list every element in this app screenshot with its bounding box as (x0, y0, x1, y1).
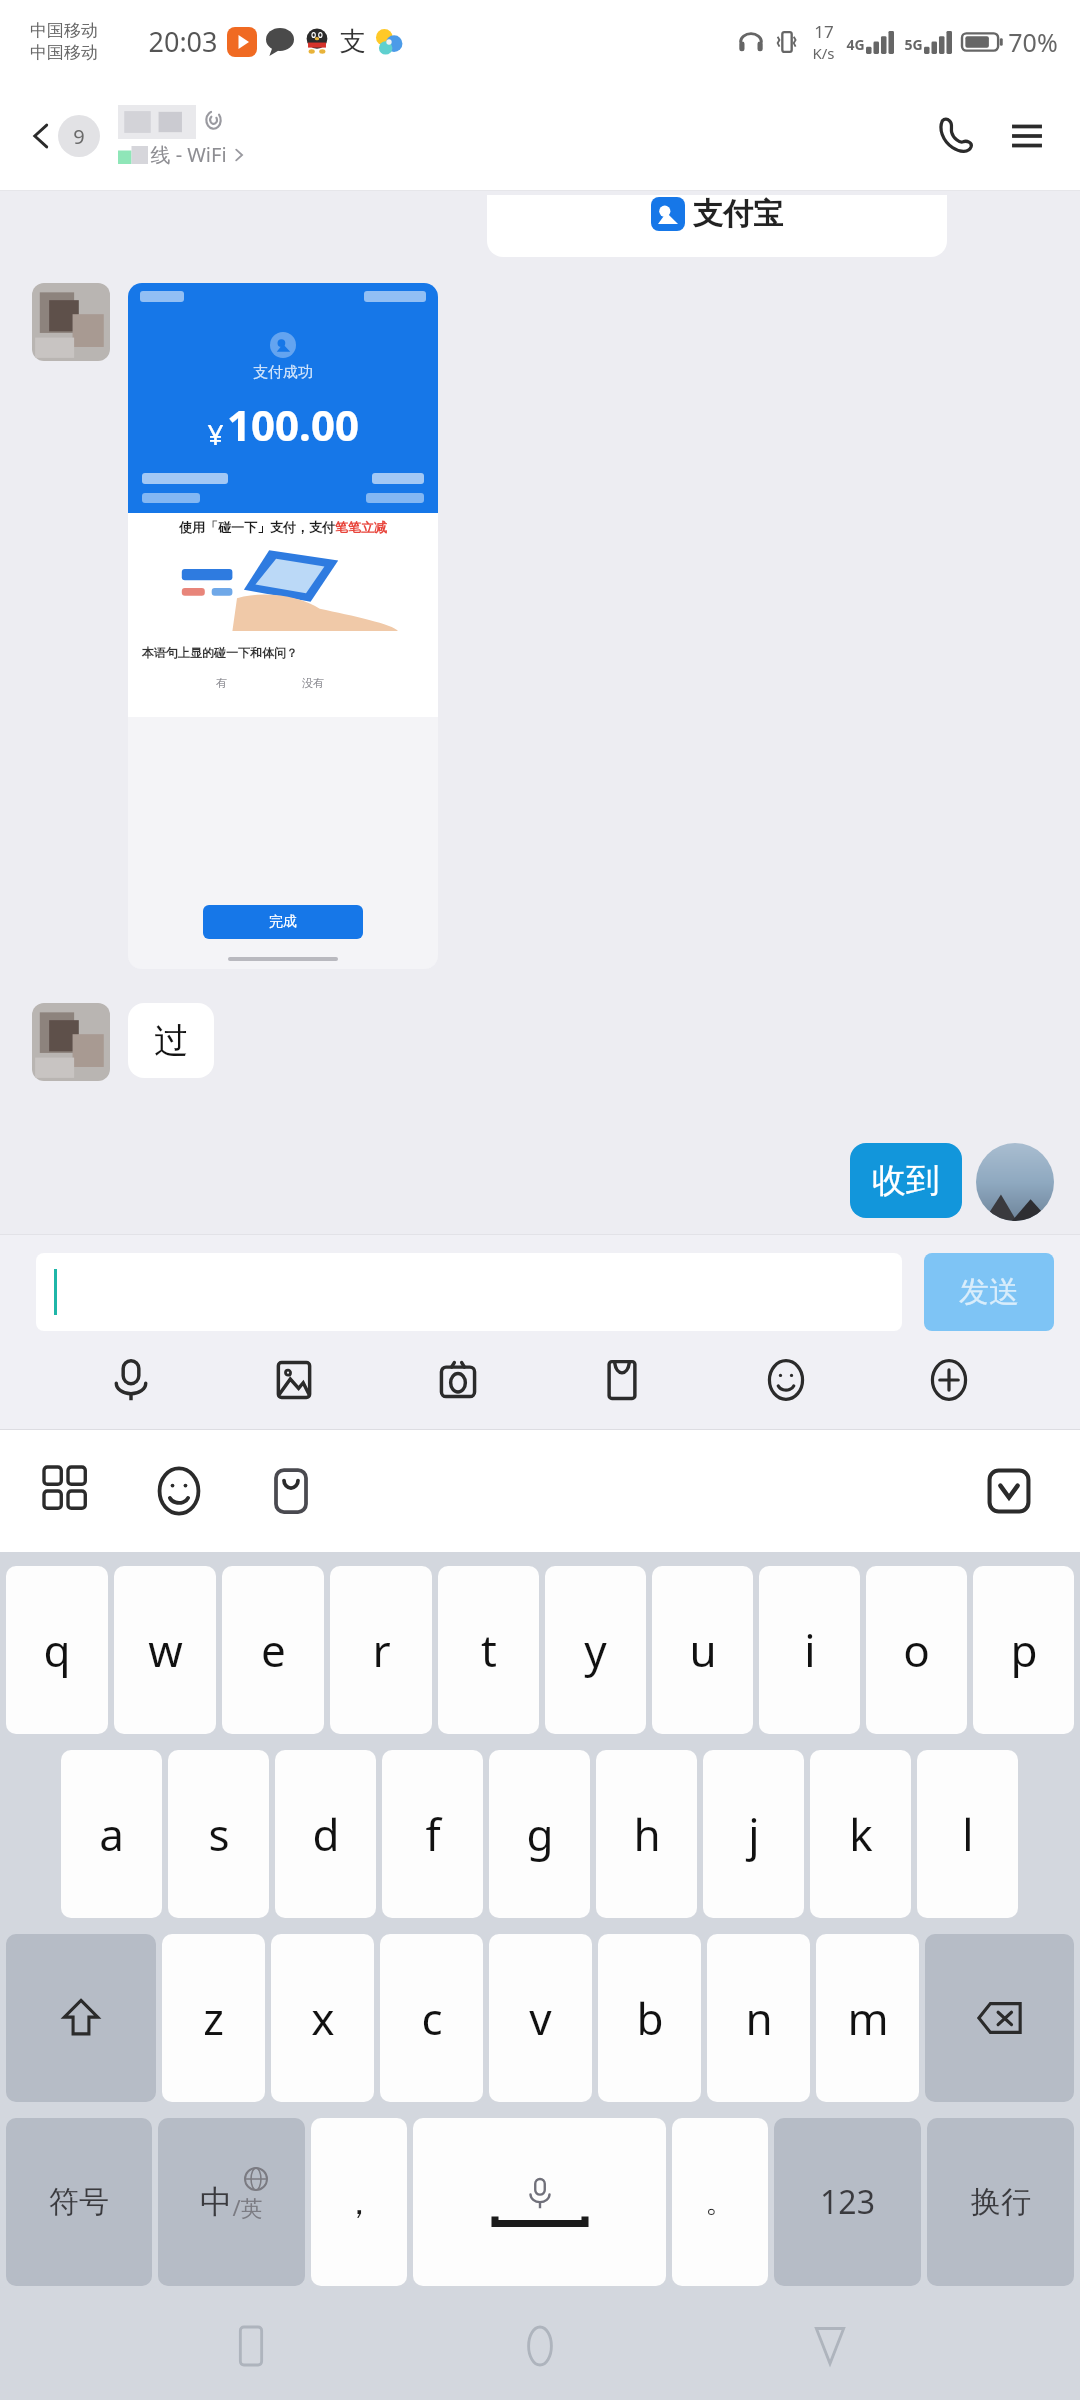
button[interactable] (32, 1003, 110, 1081)
staticText: 4G (846, 35, 865, 54)
button[interactable]: g (489, 1750, 590, 1918)
button[interactable]: Hide keyboard (972, 1454, 1046, 1528)
button[interactable]: Voice message (98, 1347, 164, 1413)
button[interactable]: i (759, 1566, 860, 1734)
button[interactable]: l (917, 1750, 1018, 1918)
button[interactable]: v (489, 1934, 592, 2102)
button[interactable]: Keyboard layouts (34, 1457, 102, 1525)
staticText: c (421, 1988, 443, 2048)
button[interactable]: New line (927, 2118, 1074, 2286)
button[interactable]: u (652, 1566, 753, 1734)
staticText: 没有 (302, 676, 324, 690)
staticText: 中 (200, 2182, 232, 2222)
button[interactable]: Back, 9 unread (20, 109, 108, 163)
staticText: d (312, 1804, 340, 1864)
button[interactable]: j (703, 1750, 804, 1918)
button[interactable]: Emoji (753, 1347, 819, 1413)
button[interactable]: p (973, 1566, 1074, 1734)
staticText: 支付成功 (253, 363, 313, 382)
staticText: 5G (904, 35, 923, 54)
button[interactable]: m (816, 1934, 919, 2102)
staticText: 发送 (959, 1273, 1019, 1311)
button[interactable]: Menu (1000, 109, 1054, 163)
button[interactable]: o (866, 1566, 967, 1734)
staticText: t (481, 1620, 497, 1680)
staticText: 123 (820, 2180, 875, 2224)
staticText: 支付宝 (693, 195, 783, 233)
button[interactable]: Language (158, 2118, 305, 2286)
button[interactable]: f (382, 1750, 483, 1918)
button[interactable]: Back (791, 2307, 869, 2385)
staticText: 过 (154, 1019, 188, 1062)
staticText: w (148, 1620, 183, 1680)
button[interactable]: d (275, 1750, 376, 1918)
button[interactable] (976, 1143, 1054, 1221)
button[interactable]: Numbers (774, 2118, 921, 2286)
staticText: 笔笔立减 (335, 519, 387, 535)
staticText: 17 (814, 20, 834, 43)
staticText: 100.00 (227, 396, 359, 453)
staticText: v (529, 1988, 552, 2048)
button[interactable]: More (916, 1347, 982, 1413)
staticText: 支 (340, 25, 366, 58)
staticText: 中国移动 (30, 42, 98, 63)
button[interactable]: z (162, 1934, 265, 2102)
button[interactable] (32, 283, 110, 361)
staticText: x (311, 1988, 335, 2048)
staticText: 中国移动 (30, 20, 98, 41)
button[interactable]: Backspace (925, 1934, 1074, 2102)
staticText: n (745, 1988, 773, 2048)
staticText: /英 (232, 2192, 263, 2222)
button[interactable]: Home (501, 2307, 579, 2385)
staticText: g (526, 1804, 554, 1864)
button[interactable]: c (380, 1934, 483, 2102)
staticText: 有 (216, 676, 227, 690)
staticText: K/s (812, 43, 835, 63)
button[interactable]: b (598, 1934, 701, 2102)
staticText: 本语句上显的碰一下和体问？ (142, 645, 298, 660)
button[interactable]: Period (672, 2118, 768, 2286)
button[interactable]: q (6, 1566, 108, 1734)
button[interactable]: r (330, 1566, 432, 1734)
staticText: 收到 (872, 1159, 940, 1202)
staticText: q (43, 1620, 71, 1680)
button[interactable]: y (545, 1566, 646, 1734)
staticText: 。 (705, 2183, 735, 2221)
staticText: 70% (1008, 25, 1058, 59)
button[interactable]: x (271, 1934, 374, 2102)
button[interactable]: a (61, 1750, 162, 1918)
button[interactable]: Shift (6, 1934, 156, 2102)
staticText: 线 - WiFi (150, 141, 227, 168)
button[interactable]: 收到 (850, 1143, 962, 1218)
staticText: 9 (73, 123, 85, 150)
button[interactable]: Store (256, 1456, 326, 1526)
staticText: 20:03 (148, 23, 218, 60)
staticText: u (689, 1620, 717, 1680)
button[interactable]: Red packet (589, 1347, 655, 1413)
button[interactable]: Emoji (142, 1454, 216, 1528)
button[interactable]: Symbols (6, 2118, 152, 2286)
button[interactable]: 过 (128, 1003, 214, 1078)
button[interactable]: h (596, 1750, 697, 1918)
button[interactable]: Call (928, 108, 984, 164)
button[interactable]: Comma (311, 2118, 407, 2286)
staticText: f (425, 1804, 441, 1864)
button[interactable]: 线 - WiFi (118, 105, 246, 168)
button[interactable]: Recents (212, 2307, 290, 2385)
button[interactable]: 支付宝 (487, 195, 947, 257)
staticText: ¥ (207, 415, 224, 453)
button[interactable]: w (114, 1566, 216, 1734)
button[interactable]: 发送 (924, 1253, 1054, 1331)
staticText: 使用「碰一下」支付，支付 (179, 519, 335, 535)
button[interactable]: k (810, 1750, 911, 1918)
button[interactable]: t (438, 1566, 539, 1734)
button[interactable]: Payment screenshot (128, 283, 438, 969)
button[interactable]: s (168, 1750, 269, 1918)
button[interactable]: Camera (425, 1347, 491, 1413)
button[interactable] (36, 1253, 902, 1331)
button[interactable]: Space (413, 2118, 666, 2286)
staticText: h (633, 1804, 661, 1864)
button[interactable]: n (707, 1934, 810, 2102)
button[interactable]: e (222, 1566, 324, 1734)
button[interactable]: Photos (261, 1347, 327, 1413)
